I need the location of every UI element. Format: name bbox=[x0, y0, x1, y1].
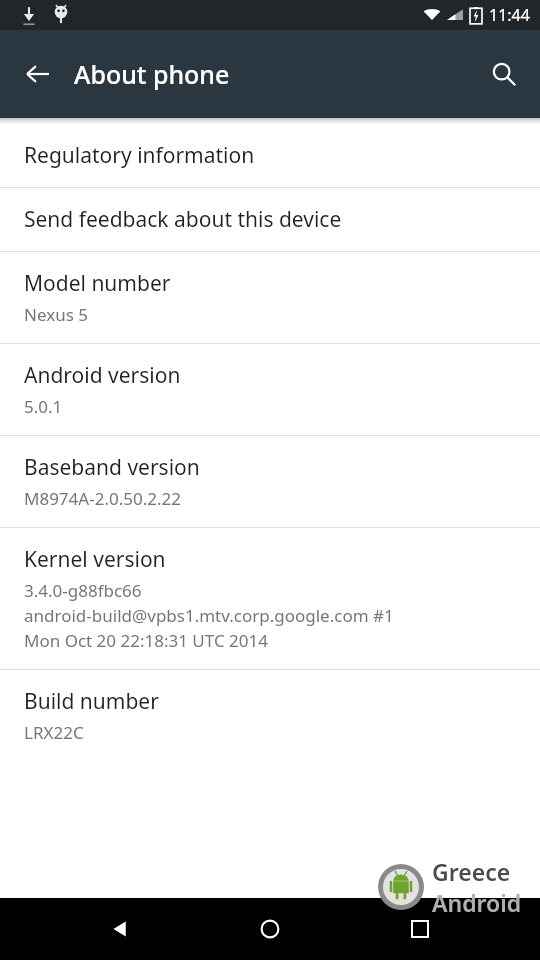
button[interactable]: Model number bbox=[0, 252, 540, 343]
staticText: Kernel version bbox=[24, 545, 166, 574]
staticText: android-build@vpbs1.mtv.corp.google.com … bbox=[24, 604, 394, 627]
staticText: M8974A-2.0.50.2.22 bbox=[24, 487, 181, 510]
staticText: Regulatory information bbox=[24, 141, 255, 170]
staticText: Android bbox=[432, 887, 522, 918]
staticText: Greece bbox=[432, 856, 511, 887]
staticText: Nexus 5 bbox=[24, 303, 88, 326]
staticText: Baseband version bbox=[24, 453, 200, 482]
staticText: Android version bbox=[24, 361, 181, 390]
button[interactable]: Back bbox=[90, 899, 150, 959]
button[interactable]: Kernel version bbox=[0, 528, 540, 669]
staticText: Mon Oct 20 22:18:31 UTC 2014 bbox=[24, 629, 268, 652]
staticText: 11:44 bbox=[489, 4, 530, 26]
staticText: 5.0.1 bbox=[24, 395, 63, 418]
staticText: About phone bbox=[74, 57, 230, 91]
button[interactable]: Android version bbox=[0, 344, 540, 435]
button[interactable]: Baseband version bbox=[0, 436, 540, 527]
staticText: Build number bbox=[24, 687, 159, 716]
staticText: LRX22C bbox=[24, 721, 84, 744]
button[interactable]: Home bbox=[240, 899, 300, 959]
staticText: 3.4.0-g88fbc66 bbox=[24, 579, 142, 602]
button[interactable]: Recent apps bbox=[390, 899, 450, 959]
button[interactable]: Send feedback about this device bbox=[0, 188, 540, 251]
staticText: Model number bbox=[24, 269, 171, 298]
button[interactable]: Build number bbox=[0, 670, 540, 761]
button[interactable]: Search bbox=[476, 46, 532, 102]
staticText: Send feedback about this device bbox=[24, 205, 342, 234]
button[interactable]: Back bbox=[10, 46, 66, 102]
button[interactable]: Regulatory information bbox=[0, 124, 540, 187]
